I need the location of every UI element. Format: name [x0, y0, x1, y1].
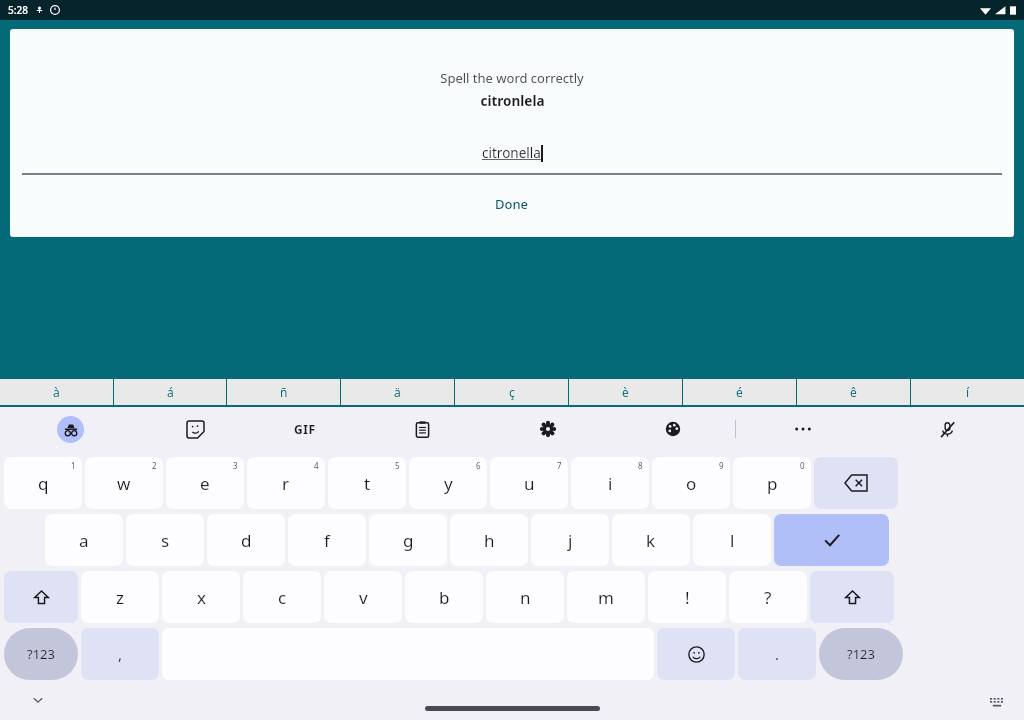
button[interactable]: f [288, 514, 366, 566]
staticText: . [775, 644, 780, 664]
staticText: Spell the word correctly [440, 69, 584, 87]
staticText: w [117, 472, 131, 495]
button[interactable]: i [571, 457, 649, 509]
button[interactable]: r [247, 457, 325, 509]
staticText: v [359, 586, 368, 609]
button[interactable]: ç [455, 379, 568, 405]
button[interactable]: l [693, 514, 771, 566]
staticText: 6 [476, 460, 481, 471]
button[interactable]: ! [648, 571, 726, 623]
button[interactable]: a [45, 514, 123, 566]
button[interactable]: h [450, 514, 528, 566]
staticText: g [403, 529, 414, 552]
button[interactable]: Theme [610, 407, 735, 451]
button[interactable]: Enter [774, 514, 889, 566]
staticText: i [608, 472, 613, 495]
button[interactable]: ñ [227, 379, 340, 405]
button[interactable]: Incognito mode [57, 416, 84, 443]
button[interactable]: u [490, 457, 568, 509]
button[interactable]: c [243, 571, 321, 623]
button[interactable]: Shift [810, 571, 894, 623]
button[interactable]: Backspace [814, 457, 898, 509]
staticText: e [200, 472, 210, 495]
button[interactable]: n [486, 571, 564, 623]
staticText: k [646, 529, 656, 552]
button[interactable]: ê [797, 379, 910, 405]
button[interactable]: q [4, 457, 82, 509]
staticText: 5:28 [8, 3, 28, 17]
staticText: 4 [314, 460, 319, 471]
staticText: á [167, 384, 174, 400]
staticText: à [53, 384, 60, 400]
button[interactable]: k [612, 514, 690, 566]
button[interactable]: m [567, 571, 645, 623]
staticText: c [278, 586, 287, 609]
button[interactable]: Emoji [657, 628, 735, 680]
button[interactable]: j [531, 514, 609, 566]
staticText: y [444, 472, 453, 495]
button[interactable]: w [85, 457, 163, 509]
button[interactable]: ä [341, 379, 454, 405]
button[interactable]: Stickers [140, 407, 250, 451]
button[interactable]: o [652, 457, 730, 509]
button[interactable]: z [81, 571, 159, 623]
button[interactable]: v [324, 571, 402, 623]
button[interactable]: GIF [250, 407, 360, 451]
staticText: z [116, 586, 124, 609]
button[interactable]: é [683, 379, 796, 405]
button[interactable]: ? [729, 571, 807, 623]
staticText: ?123 [847, 645, 875, 663]
button[interactable]: d [207, 514, 285, 566]
button[interactable]: Voice input off [870, 407, 1024, 451]
staticText: ? [764, 586, 772, 609]
staticText: r [282, 472, 290, 495]
button[interactable]: , [81, 628, 159, 680]
staticText: ! [685, 586, 690, 609]
button[interactable]: b [405, 571, 483, 623]
button[interactable]: à [0, 379, 113, 405]
staticText: 9 [719, 460, 724, 471]
staticText: l [730, 529, 735, 552]
button[interactable]: Clipboard [360, 407, 485, 451]
staticText: q [38, 472, 49, 495]
staticText: ñ [280, 384, 288, 400]
button[interactable]: More options [736, 407, 870, 451]
button[interactable]: Shift [4, 571, 78, 623]
button[interactable]: g [369, 514, 447, 566]
button[interactable]: í [911, 379, 1024, 405]
button[interactable]: Change keyboard [986, 694, 1008, 712]
staticText: p [767, 472, 778, 495]
button[interactable]: e [166, 457, 244, 509]
button[interactable]: x [162, 571, 240, 623]
button[interactable]: Done [475, 191, 549, 217]
staticText: n [520, 586, 531, 609]
button[interactable]: Hide keyboard [26, 688, 50, 712]
button[interactable]: ?123 [4, 628, 78, 680]
button[interactable]: ?123 [819, 628, 903, 680]
staticText: 8 [638, 460, 643, 471]
button[interactable]: s [126, 514, 204, 566]
button[interactable]: t [328, 457, 406, 509]
staticText: 1 [71, 460, 76, 471]
staticText: 2 [152, 460, 157, 471]
staticText: é [736, 384, 743, 400]
staticText: h [484, 529, 495, 552]
button[interactable]: y [409, 457, 487, 509]
staticText: GIF [294, 421, 316, 437]
staticText: j [568, 529, 573, 552]
staticText: Done [495, 195, 529, 213]
staticText: , [118, 644, 123, 664]
staticText: 0 [800, 460, 805, 471]
staticText: 7 [557, 460, 562, 471]
button[interactable]: . [738, 628, 816, 680]
staticText: ä [394, 384, 401, 400]
button[interactable]: è [569, 379, 682, 405]
staticText: u [524, 472, 535, 495]
staticText: citronella [482, 144, 541, 162]
staticText: í [966, 384, 970, 400]
button[interactable]: p [733, 457, 811, 509]
button[interactable]: Settings [485, 407, 610, 451]
staticText: t [364, 472, 371, 495]
button[interactable]: á [114, 379, 226, 405]
